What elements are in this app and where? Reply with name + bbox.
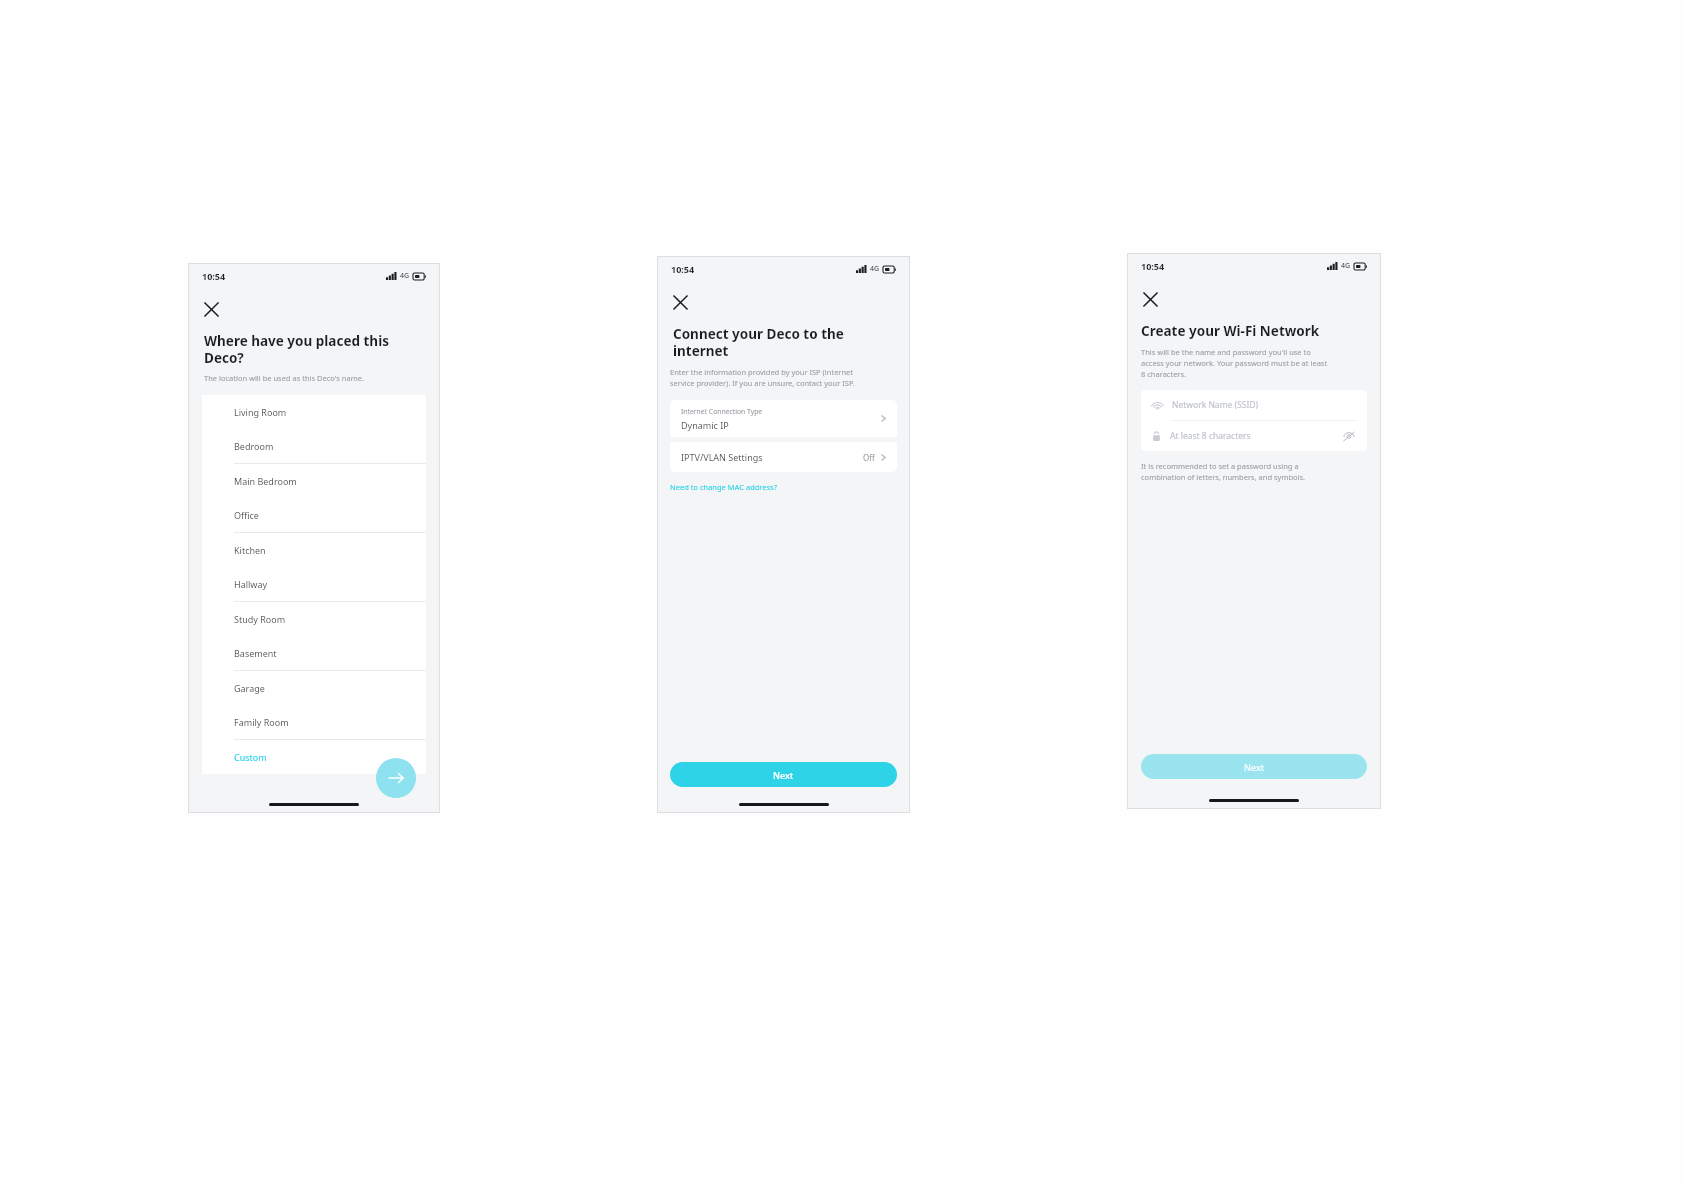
staticText: Where have you placed this Deco? — [204, 332, 432, 367]
staticText: Create your Wi-Fi Network — [1141, 322, 1320, 340]
button[interactable]: Hallway — [202, 567, 426, 601]
button[interactable]: IPTV/VLAN Settings — [670, 442, 897, 472]
button[interactable]: Garage — [202, 671, 426, 705]
staticText: Custom — [234, 751, 267, 763]
button[interactable]: Show password — [1342, 429, 1356, 443]
staticText: Family Room — [234, 716, 289, 728]
staticText: Study Room — [234, 613, 286, 625]
staticText: IPTV/VLAN Settings — [681, 451, 863, 463]
staticText: Dynamic IP — [681, 419, 729, 431]
staticText: 10:54 — [202, 270, 226, 282]
button[interactable]: Custom — [202, 740, 426, 774]
button[interactable]: Kitchen — [202, 533, 426, 567]
staticText: Internet Connection Type — [681, 407, 763, 416]
button[interactable]: Main Bedroom — [202, 464, 426, 498]
staticText: 4G — [400, 271, 410, 281]
staticText: 10:54 — [671, 263, 695, 275]
staticText: Enter the information provided by your I… — [670, 367, 855, 388]
button[interactable]: Study Room — [202, 602, 426, 636]
button[interactable]: Living Room — [202, 395, 426, 429]
button[interactable]: Need to change MAC address? — [670, 482, 777, 492]
staticText: Living Room — [234, 406, 287, 418]
button[interactable]: At least 8 characters — [1141, 421, 1367, 451]
staticText: Off — [863, 452, 875, 463]
button[interactable]: Next — [376, 758, 416, 798]
button[interactable]: Close — [198, 296, 224, 322]
staticText: Connect your Deco to the internet — [673, 325, 902, 360]
staticText: 4G — [1341, 261, 1351, 271]
button[interactable]: Family Room — [202, 705, 426, 739]
staticText: This will be the name and password you'l… — [1141, 347, 1328, 379]
staticText: 10:54 — [1141, 260, 1165, 272]
button[interactable]: Office — [202, 498, 426, 532]
button[interactable]: Basement — [202, 636, 426, 670]
staticText: Basement — [234, 647, 277, 659]
staticText: At least 8 characters — [1170, 430, 1342, 442]
button[interactable]: Bedroom — [202, 429, 426, 463]
staticText: Need to change MAC address? — [670, 482, 777, 492]
staticText: Hallway — [234, 578, 268, 590]
button[interactable]: Close — [1137, 286, 1163, 312]
staticText: Garage — [234, 682, 265, 694]
button[interactable]: Next — [1141, 754, 1367, 779]
staticText: Kitchen — [234, 544, 266, 556]
staticText: Office — [234, 509, 259, 521]
button[interactable]: Close — [667, 289, 693, 315]
staticText: The location will be used as this Deco's… — [204, 373, 364, 383]
staticText: It is recommended to set a password usin… — [1141, 461, 1306, 482]
staticText: Network Name (SSID) — [1172, 399, 1259, 411]
button[interactable]: Internet Connection Type — [670, 400, 897, 437]
staticText: Next — [773, 769, 794, 781]
button[interactable]: Next — [670, 762, 897, 787]
staticText: Main Bedroom — [234, 475, 297, 487]
staticText: Next — [1244, 761, 1265, 773]
staticText: Bedroom — [234, 440, 274, 452]
staticText: 4G — [870, 264, 880, 274]
button[interactable]: Network Name (SSID) — [1141, 390, 1367, 420]
